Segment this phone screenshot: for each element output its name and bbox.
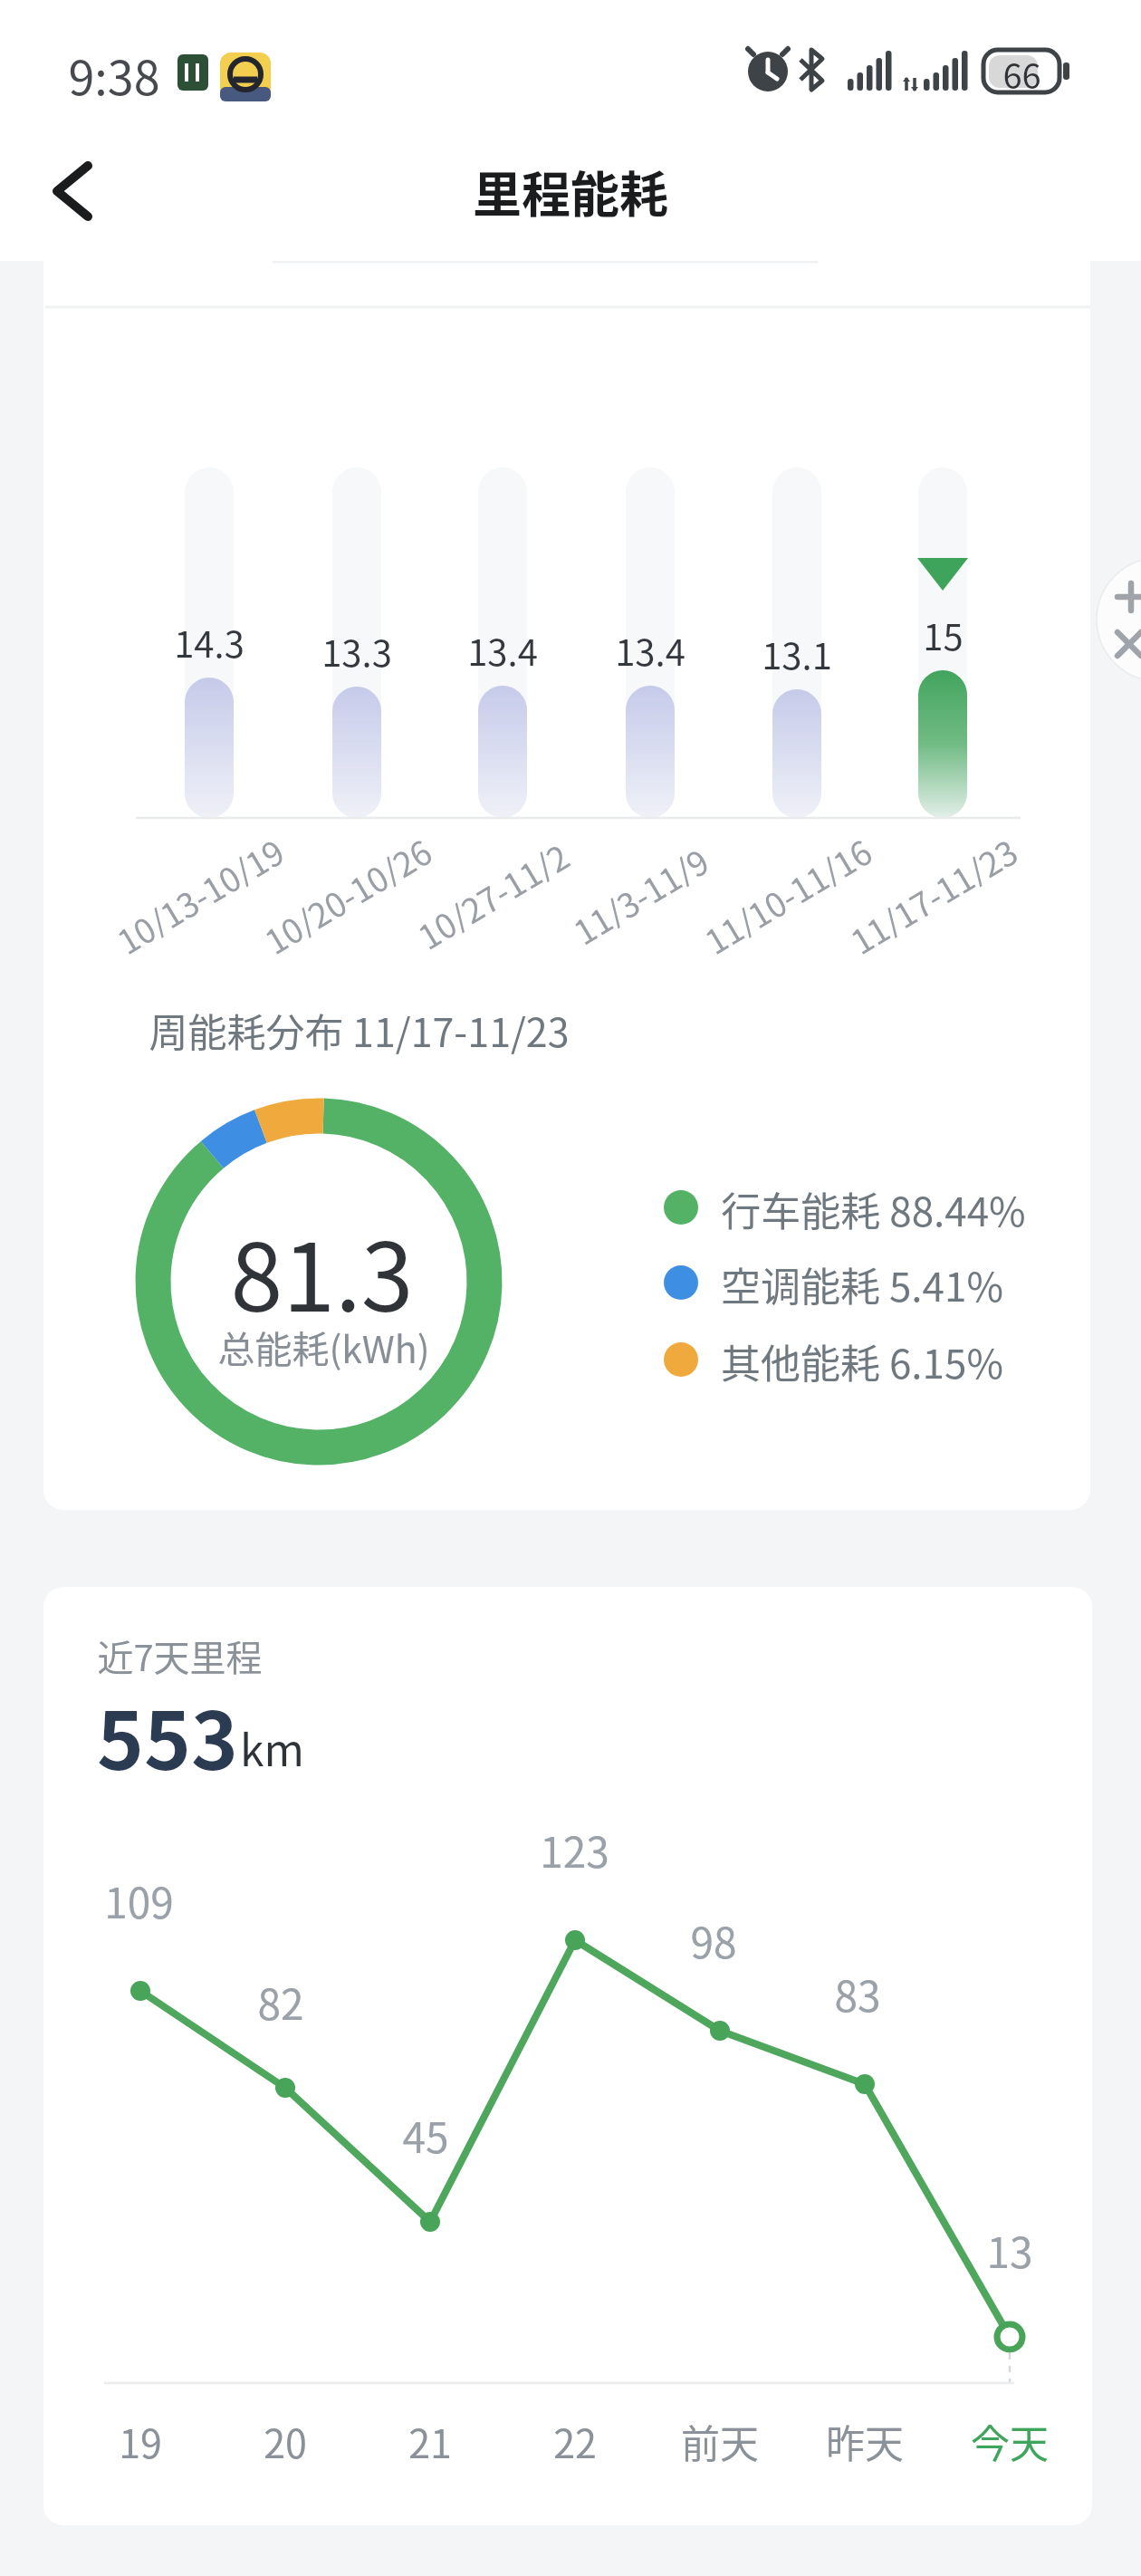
- staticText: 今天: [971, 2413, 1049, 2464]
- staticText: 82: [257, 1972, 304, 2026]
- staticText: 98: [690, 1910, 737, 1965]
- staticText: 66: [1002, 49, 1041, 94]
- staticText: 前天: [681, 2413, 759, 2464]
- staticText: 其他能耗 6.15%: [721, 1332, 1003, 1387]
- staticText: 81.3: [230, 1202, 414, 1320]
- button[interactable]: 前天: [647, 2413, 792, 2464]
- staticText: 里程能耗: [473, 156, 668, 226]
- button[interactable]: [1094, 558, 1141, 685]
- button[interactable]: 21: [358, 2413, 503, 2464]
- button[interactable]: [36, 154, 118, 235]
- staticText: 近7天里程: [97, 1629, 263, 1680]
- staticText: 11/10-11/16: [694, 826, 877, 958]
- staticText: 20: [264, 2413, 307, 2464]
- staticText: 10/13-10/19: [107, 826, 289, 958]
- staticText: 总能耗(kWh): [217, 1320, 430, 1373]
- staticText: 昨天: [826, 2413, 904, 2464]
- staticText: 109: [104, 1870, 174, 1925]
- staticText: 10/20-10/26: [254, 826, 436, 958]
- staticText: 21: [408, 2413, 452, 2464]
- staticText: 11/17-11/23: [840, 826, 1022, 958]
- staticText: 周能耗分布 11/17-11/23: [149, 1002, 570, 1056]
- staticText: 行车能耗 88.44%: [721, 1180, 1026, 1235]
- button[interactable]: 22: [503, 2413, 647, 2464]
- staticText: 13.3: [321, 625, 392, 676]
- button[interactable]: 19: [68, 2413, 213, 2464]
- button[interactable]: 20: [213, 2413, 358, 2464]
- staticText: 13.4: [467, 624, 538, 675]
- staticText: 9:38: [68, 41, 160, 104]
- staticText: 13.4: [615, 624, 686, 675]
- staticText: 空调能耗 5.41%: [721, 1255, 1003, 1310]
- staticText: 45: [402, 2105, 449, 2159]
- staticText: 15: [923, 609, 964, 659]
- staticText: 123: [540, 1820, 609, 1874]
- staticText: 19: [119, 2413, 162, 2464]
- staticText: 14.3: [174, 616, 244, 667]
- button[interactable]: 今天: [937, 2413, 1082, 2464]
- staticText: 13: [986, 2220, 1033, 2274]
- staticText: 83: [834, 1964, 881, 2018]
- staticText: 553: [97, 1677, 238, 1793]
- button[interactable]: 昨天: [792, 2413, 937, 2464]
- staticText: 10/27-11/2: [408, 831, 574, 953]
- staticText: 13.1: [762, 628, 832, 678]
- staticText: 11/3-11/9: [563, 836, 714, 949]
- staticText: 22: [553, 2413, 597, 2464]
- staticText: km: [240, 1716, 304, 1779]
